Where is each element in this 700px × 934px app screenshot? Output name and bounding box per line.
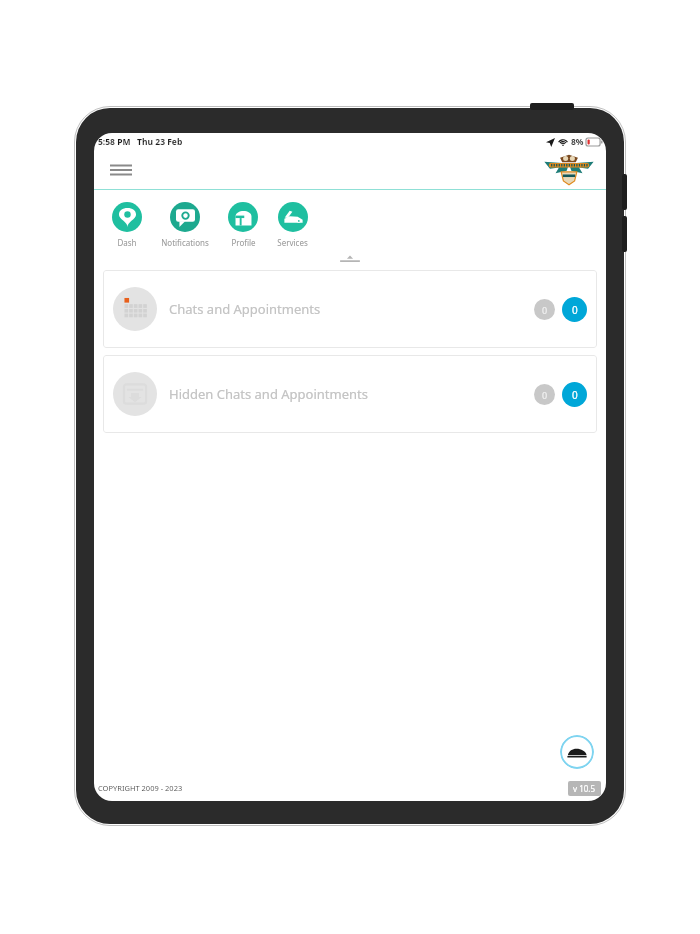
button[interactable]: Hidden Chats and Appointments bbox=[103, 355, 597, 433]
other: Power bbox=[530, 103, 574, 110]
button[interactable]: Chats and Appointments bbox=[103, 270, 597, 348]
staticText: Profile bbox=[231, 237, 256, 248]
staticText: 5:58 PM Thu 23 Feb bbox=[98, 136, 183, 148]
staticText: COPYRIGHT 2009 - 2023 bbox=[98, 783, 183, 793]
button[interactable]: Notifications bbox=[157, 200, 213, 250]
button[interactable]: Menu bbox=[104, 153, 138, 187]
staticText: Notifications bbox=[161, 237, 209, 248]
button[interactable]: Vehicle bbox=[560, 735, 594, 769]
button[interactable]: Emerald Coast Harley-Davidson logo bbox=[540, 153, 598, 187]
button[interactable]: Dash bbox=[108, 200, 146, 250]
staticText: 0 bbox=[542, 304, 548, 316]
staticText: 0 bbox=[542, 389, 548, 401]
button[interactable]: Collapse bbox=[94, 250, 606, 266]
button[interactable]: Services bbox=[273, 200, 312, 250]
staticText: v 10.5 bbox=[573, 783, 596, 794]
staticText: Services bbox=[277, 237, 308, 248]
staticText: Dash bbox=[117, 237, 137, 248]
staticText: 0 bbox=[572, 303, 578, 317]
button[interactable]: Profile bbox=[224, 200, 262, 250]
staticText: 0 bbox=[572, 388, 578, 402]
staticText: Hidden Chats and Appointments bbox=[169, 385, 368, 403]
staticText: Chats and Appointments bbox=[169, 300, 321, 318]
staticText: 8% bbox=[571, 136, 584, 148]
